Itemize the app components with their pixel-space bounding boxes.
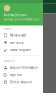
- staticText: Account: [4, 59, 15, 63]
- staticText: Device: [4, 27, 12, 30]
- button[interactable]: Device Register: [0, 46, 43, 54]
- button[interactable]: WiFi Setup: [0, 39, 43, 46]
- staticText: Memory card: [10, 34, 26, 37]
- staticText: Sign out: [10, 73, 22, 77]
- staticText: Account Information: [10, 66, 38, 69]
- staticText: Delete Account: [10, 80, 32, 84]
- staticText: WiFi Setup: [10, 41, 24, 44]
- button[interactable]: Account Information: [0, 64, 43, 71]
- button[interactable]: Memory card: [0, 32, 43, 39]
- button[interactable]: Sign out: [0, 71, 43, 78]
- staticText: andrew.johnson@mail.com: [4, 18, 39, 21]
- staticText: Andrew Johnson: [4, 13, 27, 17]
- button[interactable]: Delete Account: [0, 78, 43, 86]
- staticText: Device Register: [10, 48, 31, 52]
